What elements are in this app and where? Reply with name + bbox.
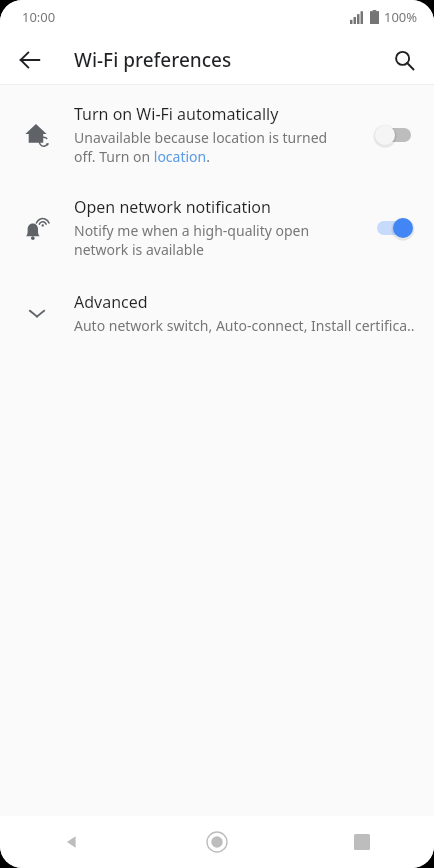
button[interactable]: Turn on Wi-Fi automatically — [0, 97, 434, 172]
staticText: 100% — [384, 8, 418, 26]
staticText: Advanced — [74, 291, 148, 313]
button[interactable]: Back — [8, 38, 52, 82]
staticText: Notify me when a high-quality open netwo… — [74, 221, 310, 259]
button[interactable]: Recent apps — [289, 816, 434, 868]
staticText: Unavailable because location is turned o… — [74, 128, 328, 166]
staticText: Wi-Fi preferences — [74, 47, 232, 73]
button[interactable]: Home — [144, 816, 289, 868]
staticText: Auto network switch, Auto-connect, Insta… — [74, 316, 415, 335]
staticText: 10:00 — [22, 8, 56, 26]
staticText: Turn on Wi-Fi automatically — [74, 103, 279, 125]
staticText: Open network notification — [74, 196, 271, 218]
button[interactable]: Back — [0, 816, 144, 868]
button[interactable]: Switch on — [368, 209, 420, 247]
button[interactable]: Advanced — [0, 285, 434, 341]
button[interactable]: Search — [382, 38, 426, 82]
button[interactable]: Switch off — [368, 116, 420, 154]
button[interactable]: Open network notification — [0, 190, 434, 265]
